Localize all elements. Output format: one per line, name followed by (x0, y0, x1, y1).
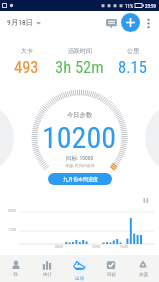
staticText: 5000 (8, 208, 16, 213)
staticText: 公里 (127, 47, 139, 55)
button[interactable]: 我 (0, 255, 31, 282)
button[interactable]: 9月18日 (5, 14, 43, 31)
staticText: 运动 (75, 276, 84, 282)
staticText: 8.15 (118, 58, 147, 77)
button[interactable]: 九月份本周进度 (48, 173, 112, 185)
staticText: 11% (125, 3, 134, 9)
button[interactable]: 大卡 (0, 47, 53, 77)
staticText: 12:00 (92, 245, 100, 249)
button[interactable]: Messages (101, 13, 121, 33)
staticText: 目标: 10000 (66, 155, 94, 162)
staticText: 目标 (107, 272, 116, 278)
staticText: 我 (13, 272, 18, 278)
button[interactable]: Add (121, 13, 140, 32)
staticText: 1700 (8, 227, 16, 232)
staticText: 3h 52m (55, 58, 104, 77)
staticText: 08:00 (55, 245, 63, 249)
button[interactable]: More options (140, 15, 156, 31)
button[interactable]: 公里 (106, 47, 159, 77)
staticText: 活跃时间 (68, 47, 92, 55)
button[interactable]: 活跃时间 (53, 47, 106, 77)
staticText: 九月份本周进度 (63, 176, 98, 182)
staticText: 9月18日 (7, 18, 34, 27)
staticText: 大卡 (21, 47, 33, 55)
staticText: 10200 (42, 120, 117, 155)
staticText: 今日步数 (67, 111, 93, 119)
staticText: 16:00 (120, 245, 128, 249)
button[interactable]: 目标 (95, 255, 127, 282)
button[interactable]: 统计 (31, 255, 63, 282)
button[interactable]: 运动 (63, 255, 95, 282)
staticText: 统计 (43, 272, 52, 278)
staticText: 493 (14, 58, 39, 77)
staticText: 23:59 (145, 3, 157, 9)
button[interactable]: 来源 (127, 255, 159, 282)
staticText: 来源 (139, 272, 148, 278)
staticText: 来源: 时间记录器 (65, 163, 95, 168)
